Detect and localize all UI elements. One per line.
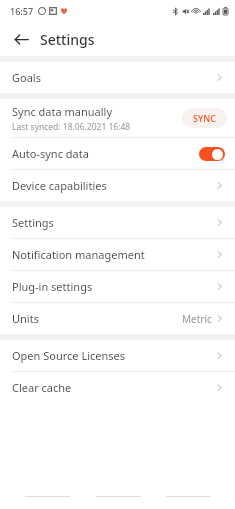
staticText: Units xyxy=(12,311,39,326)
button[interactable]: Goals xyxy=(0,62,235,93)
staticText: Notification management xyxy=(12,247,145,262)
staticText: Last synced: 18.06.2021 16:48 xyxy=(12,121,131,133)
staticText: Metric xyxy=(182,312,212,326)
button[interactable]: Device capabilities xyxy=(0,170,235,201)
staticText: Settings xyxy=(40,30,95,49)
staticText: SYNC xyxy=(193,112,216,124)
staticText: Device capabilities xyxy=(12,178,107,193)
button[interactable]: SYNC xyxy=(182,108,227,128)
button[interactable]: Auto-sync data toggle xyxy=(199,147,225,161)
button[interactable]: Clear cache xyxy=(0,372,235,403)
button[interactable]: Navigation button xyxy=(94,486,142,506)
button[interactable]: Settings xyxy=(0,207,235,238)
staticText: Auto-sync data xyxy=(12,146,89,161)
staticText: 16:57 xyxy=(10,5,34,17)
button[interactable]: Auto-sync data xyxy=(0,138,235,169)
button[interactable]: Open Source Licenses xyxy=(0,340,235,371)
button[interactable]: Units xyxy=(0,303,235,334)
staticText: Sync data manually xyxy=(12,104,113,119)
button[interactable]: Back xyxy=(8,26,34,52)
button[interactable]: Sync data manually xyxy=(0,99,235,137)
button[interactable]: Navigation button xyxy=(164,486,212,506)
staticText: Goals xyxy=(12,70,41,85)
button[interactable]: Plug-in settings xyxy=(0,271,235,302)
staticText: Open Source Licenses xyxy=(12,348,126,363)
staticText: Settings xyxy=(12,215,54,230)
staticText: Plug-in settings xyxy=(12,279,93,294)
button[interactable]: Notification management xyxy=(0,239,235,270)
staticText: Clear cache xyxy=(12,380,72,395)
button[interactable]: Navigation button xyxy=(23,486,71,506)
